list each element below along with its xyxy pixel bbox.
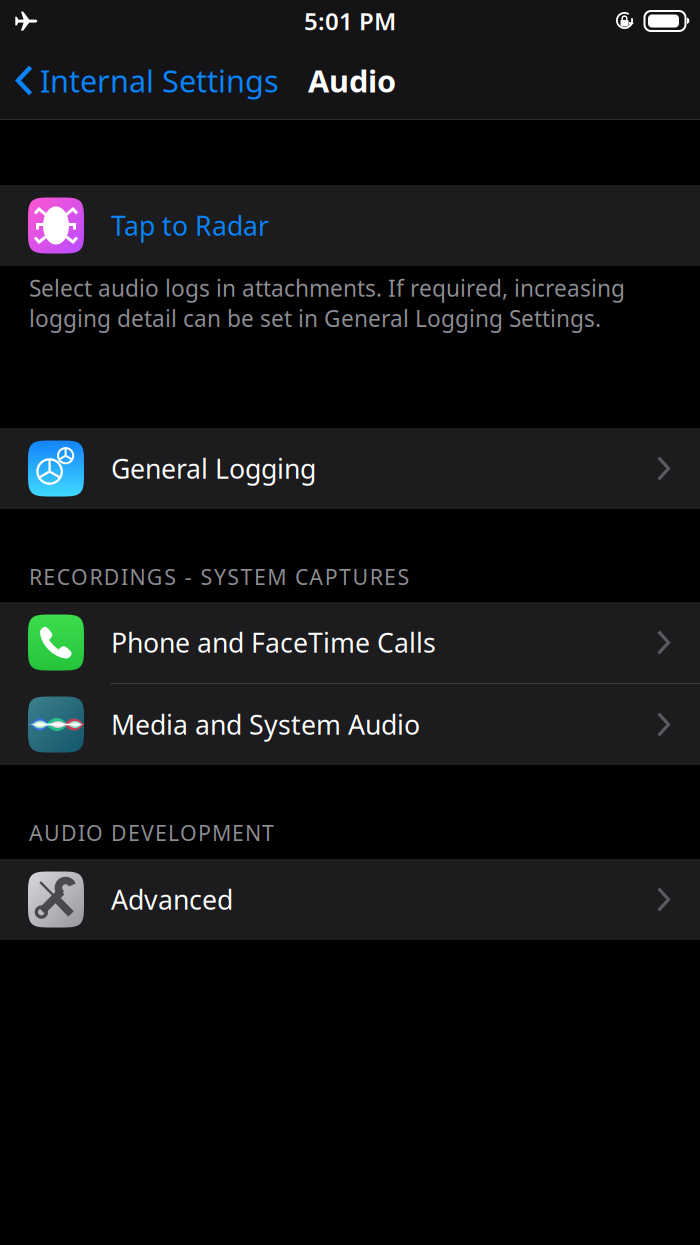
staticText: Advanced <box>111 882 233 917</box>
button[interactable]: Advanced <box>0 859 700 940</box>
button[interactable]: Phone and FaceTime Calls <box>0 602 700 683</box>
button[interactable]: Tap to Radar <box>0 185 700 266</box>
staticText: Internal Settings <box>40 60 279 101</box>
staticText: 5:01 PM <box>304 5 396 37</box>
staticText: RECORDINGS - SYSTEM CAPTURES <box>29 563 409 591</box>
staticText: AUDIO DEVELOPMENT <box>29 819 274 847</box>
staticText: Audio <box>308 60 396 101</box>
staticText: Media and System Audio <box>111 707 420 742</box>
staticText: Phone and FaceTime Calls <box>111 625 436 660</box>
button[interactable]: Media and System Audio <box>0 684 700 765</box>
staticText: General Logging <box>111 451 316 486</box>
button[interactable]: General Logging <box>0 428 700 509</box>
staticText: Tap to Radar <box>111 208 269 243</box>
button[interactable]: Internal Settings <box>0 50 279 111</box>
staticText: Select audio logs in attachments. If req… <box>29 273 625 333</box>
